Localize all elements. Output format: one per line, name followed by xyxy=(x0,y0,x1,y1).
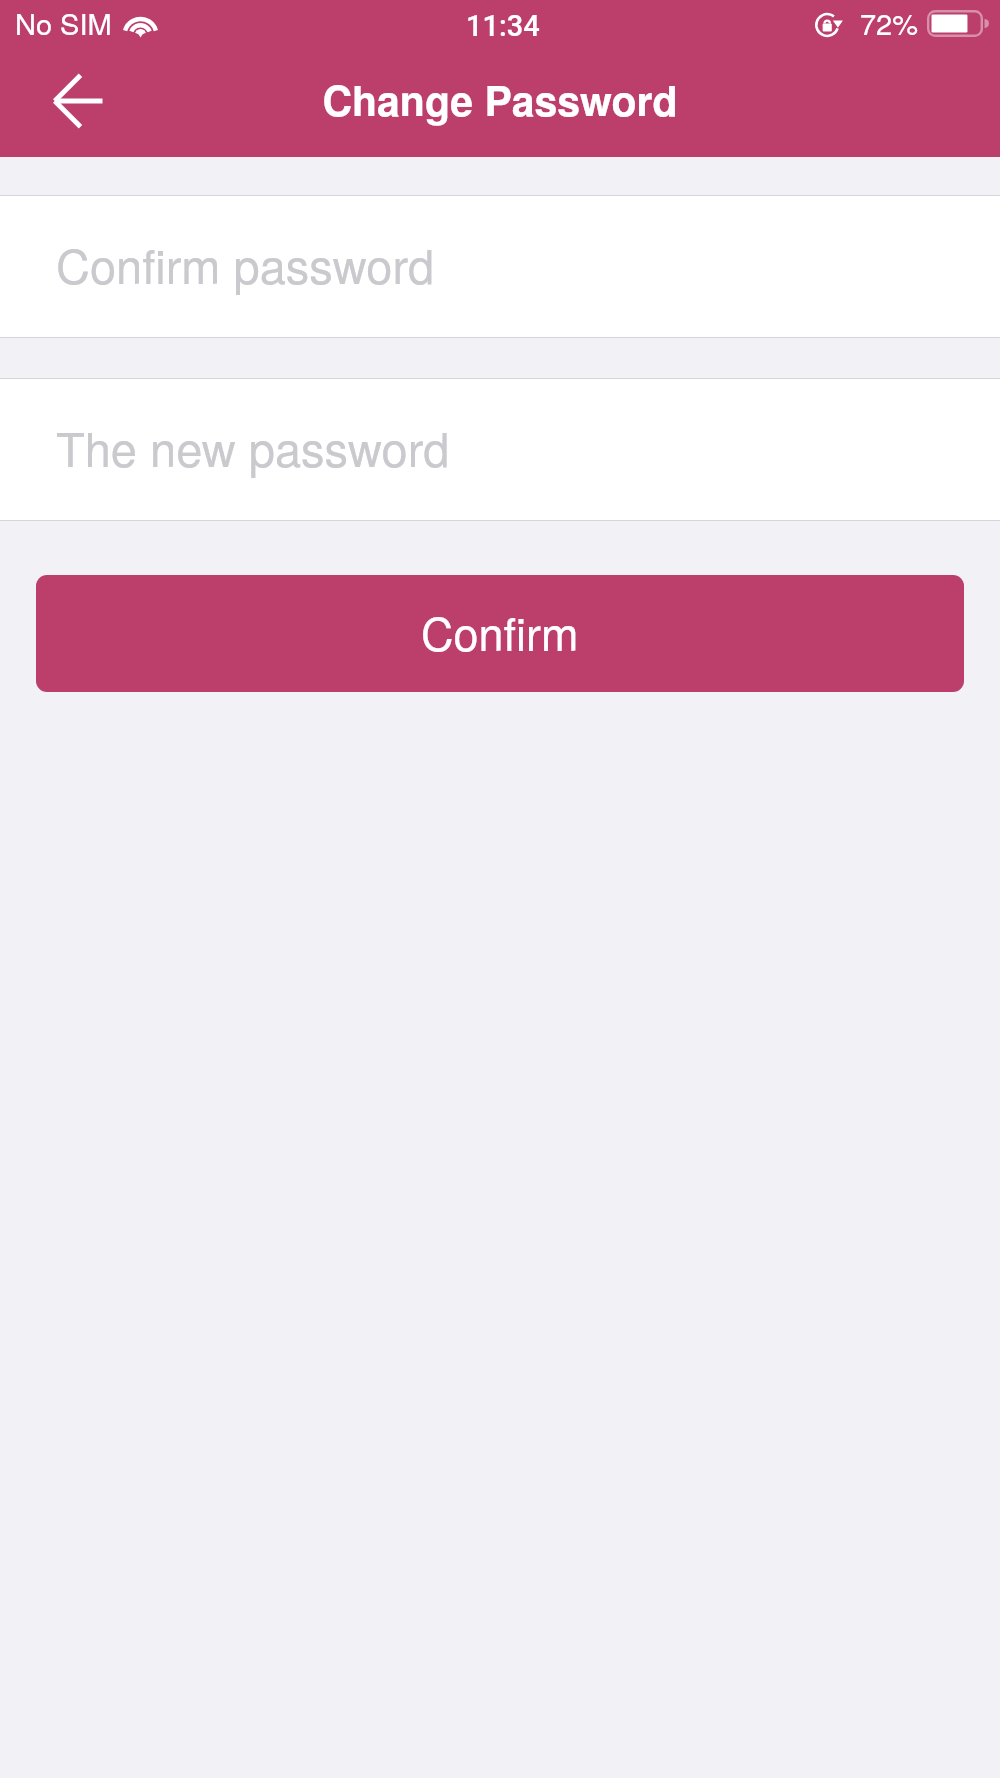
staticText: 11:34 xyxy=(466,9,540,43)
button[interactable]: Confirm xyxy=(36,575,964,692)
staticText: Change Password xyxy=(322,70,678,129)
staticText: 72% xyxy=(860,2,919,44)
button[interactable]: The new password xyxy=(0,379,1000,520)
staticText: No SIM xyxy=(15,2,112,44)
staticText: Confirm xyxy=(421,599,579,663)
button[interactable]: Back xyxy=(38,64,118,144)
staticText: The new password xyxy=(56,413,450,480)
button[interactable]: Confirm password xyxy=(0,196,1000,337)
staticText: Confirm password xyxy=(56,230,435,297)
